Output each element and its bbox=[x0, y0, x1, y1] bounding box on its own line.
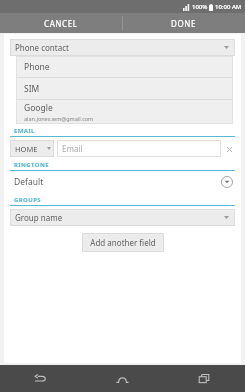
staticText: SIM bbox=[24, 83, 40, 95]
button[interactable]: Recent apps bbox=[163, 365, 245, 392]
button[interactable]: Phone contact bbox=[10, 39, 235, 56]
button[interactable]: Phone bbox=[16, 56, 233, 77]
staticText: Email bbox=[62, 143, 83, 154]
button[interactable]: Home bbox=[81, 365, 163, 392]
button[interactable]: SIM bbox=[16, 78, 233, 99]
staticText: Add another field bbox=[90, 237, 156, 248]
staticText: 100% bbox=[192, 3, 208, 11]
button[interactable]: Default bbox=[14, 171, 233, 193]
button[interactable]: HOME bbox=[10, 140, 54, 157]
button[interactable]: DONE bbox=[123, 13, 245, 33]
button[interactable]: Back bbox=[0, 365, 81, 392]
button[interactable]: Google bbox=[16, 100, 233, 124]
button[interactable]: Add another field bbox=[82, 233, 164, 252]
staticText: 10:00 AM bbox=[215, 3, 242, 11]
other: Choose ringtone bbox=[221, 176, 233, 188]
staticText: Default bbox=[14, 176, 221, 188]
staticText: Google bbox=[24, 102, 53, 114]
staticText: Group name bbox=[15, 212, 63, 223]
staticText: Phone bbox=[24, 61, 50, 73]
button[interactable]: CANCEL bbox=[0, 13, 122, 33]
button[interactable]: Remove email field bbox=[221, 141, 237, 157]
staticText: RINGTONE bbox=[14, 161, 50, 169]
staticText: alan.jones.wm@gmail.com bbox=[24, 115, 94, 122]
button[interactable]: Email bbox=[57, 140, 221, 157]
button[interactable]: Group name bbox=[10, 209, 235, 226]
staticText: Phone contact bbox=[15, 42, 69, 53]
staticText: HOME bbox=[15, 144, 38, 154]
staticText: CANCEL bbox=[44, 18, 78, 29]
staticText: EMAIL bbox=[14, 127, 35, 135]
staticText: GROUPS bbox=[14, 196, 41, 204]
staticText: DONE bbox=[171, 18, 197, 29]
